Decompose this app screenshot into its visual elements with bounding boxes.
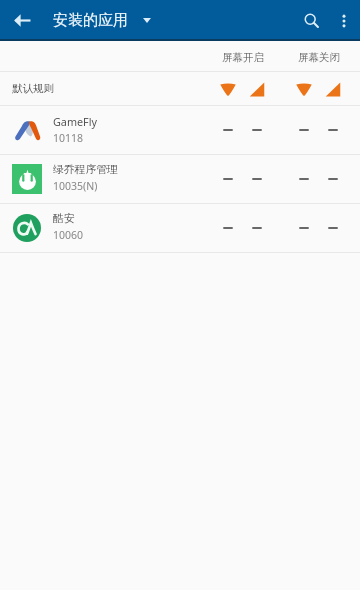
staticText: 屏幕关闭 [298,51,340,64]
staticText: 默认规则 [12,82,54,95]
staticText: 酷安 [53,212,75,226]
staticText: 10035(N) [53,179,98,193]
staticText: 屏幕开启 [222,51,264,64]
button[interactable]: 绿乔程序管理 [0,155,360,203]
staticText: 绿乔程序管理 [53,163,118,177]
button[interactable]: GameFly [0,106,360,154]
button[interactable]: 默认规则 [0,72,360,105]
staticText: 10060 [53,228,84,242]
button[interactable]: More options [328,0,360,41]
button[interactable]: Search [296,0,328,41]
button[interactable]: Back [0,0,44,41]
button[interactable]: 酷安 [0,204,360,252]
staticText: 10118 [53,131,84,145]
staticText: GameFly [53,114,97,129]
button[interactable]: Change filter [135,8,159,32]
staticText: 安装的应用 [53,11,128,30]
